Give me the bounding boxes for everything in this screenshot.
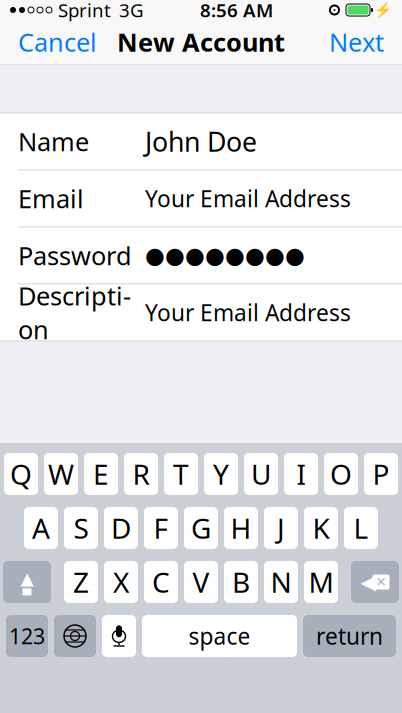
button[interactable]: E xyxy=(84,453,118,495)
staticText: A xyxy=(32,509,50,547)
staticText: Z xyxy=(73,563,89,601)
staticText: Description xyxy=(18,279,131,346)
staticText: K xyxy=(312,509,329,547)
button[interactable]: W xyxy=(44,453,78,495)
staticText: Password xyxy=(18,239,132,272)
button[interactable]: Description xyxy=(0,284,402,341)
button[interactable]: G xyxy=(184,507,218,549)
staticText: Sprint xyxy=(58,0,111,22)
staticText: B xyxy=(232,563,250,601)
staticText: Your Email Address xyxy=(145,183,351,213)
button[interactable]: Dictation xyxy=(102,615,136,657)
staticText: X xyxy=(113,563,129,601)
staticText: C xyxy=(152,563,170,601)
button[interactable]: X xyxy=(104,561,138,603)
staticText: New Account xyxy=(117,25,285,59)
staticText: U xyxy=(251,455,271,493)
button[interactable]: Cancel xyxy=(6,17,109,67)
button[interactable]: V xyxy=(184,561,218,603)
staticText: P xyxy=(372,455,389,493)
staticText: S xyxy=(73,509,88,547)
button[interactable]: H xyxy=(224,507,258,549)
button[interactable]: F xyxy=(144,507,178,549)
button[interactable]: Name xyxy=(0,113,402,170)
staticText: H xyxy=(230,509,251,547)
button[interactable]: B xyxy=(224,561,258,603)
staticText: Q xyxy=(10,455,32,493)
button[interactable]: D xyxy=(104,507,138,549)
staticText: Email xyxy=(18,182,84,215)
button[interactable]: K xyxy=(304,507,338,549)
staticText: O xyxy=(330,455,352,493)
button[interactable]: J xyxy=(264,507,298,549)
button[interactable]: R xyxy=(124,453,158,495)
staticText: G xyxy=(191,509,211,547)
button[interactable]: O xyxy=(324,453,358,495)
staticText: Next xyxy=(329,25,384,59)
staticText: return xyxy=(316,621,383,651)
button[interactable]: return xyxy=(303,615,396,657)
staticText: N xyxy=(270,563,291,601)
staticText: L xyxy=(353,509,368,547)
staticText: ●●●●●●●● xyxy=(145,243,305,268)
staticText: E xyxy=(93,455,109,493)
staticText: ▲ xyxy=(20,569,33,588)
staticText: Y xyxy=(213,455,229,493)
button[interactable]: S xyxy=(64,507,98,549)
staticText: 123 xyxy=(9,622,45,650)
button[interactable]: Z xyxy=(64,561,98,603)
staticText: R xyxy=(132,455,149,493)
button[interactable]: A xyxy=(24,507,58,549)
button[interactable]: L xyxy=(344,507,378,549)
staticText: ◀ xyxy=(360,571,375,593)
button[interactable]: I xyxy=(284,453,318,495)
button[interactable]: T xyxy=(164,453,198,495)
staticText: John Doe xyxy=(145,124,257,159)
staticText: W xyxy=(48,455,74,493)
staticText: 3G xyxy=(119,0,144,22)
button[interactable]: Email xyxy=(0,170,402,227)
staticText: F xyxy=(153,509,168,547)
staticText: V xyxy=(192,563,209,601)
staticText: D xyxy=(111,509,131,547)
button[interactable]: Delete xyxy=(351,561,399,603)
staticText: Your Email Address xyxy=(145,297,351,327)
staticText: 8:56 AM xyxy=(200,0,273,22)
staticText: ✕ xyxy=(375,574,386,589)
staticText: M xyxy=(308,563,333,601)
button[interactable]: 123 xyxy=(6,615,48,657)
button[interactable]: Password xyxy=(0,227,402,284)
button[interactable]: M xyxy=(304,561,338,603)
button[interactable]: C xyxy=(144,561,178,603)
staticText: space xyxy=(188,621,250,651)
button[interactable]: U xyxy=(244,453,278,495)
staticText: Name xyxy=(18,125,89,158)
button[interactable]: Y xyxy=(204,453,238,495)
button[interactable]: Next keyboard xyxy=(54,615,96,657)
button[interactable]: Next xyxy=(317,17,396,67)
button[interactable]: N xyxy=(264,561,298,603)
staticText: J xyxy=(277,509,285,547)
button[interactable]: space xyxy=(142,615,297,657)
button[interactable]: Q xyxy=(4,453,38,495)
staticText: I xyxy=(296,455,305,493)
staticText: ⚡ xyxy=(374,2,392,18)
button[interactable]: Shift xyxy=(3,561,51,603)
staticText: Cancel xyxy=(18,25,97,59)
staticText: T xyxy=(173,455,189,493)
button[interactable]: P xyxy=(364,453,398,495)
